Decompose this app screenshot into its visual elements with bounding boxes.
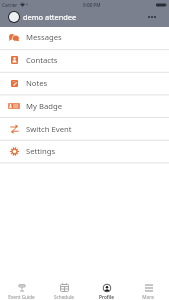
staticText: demo attendee [23, 12, 77, 22]
staticText: Profile [99, 294, 114, 300]
button[interactable]: More options [145, 10, 159, 24]
button[interactable]: Schedule [43, 278, 85, 300]
button[interactable]: Contacts [0, 50, 169, 73]
button[interactable]: Event Guide [0, 278, 43, 300]
staticText: Messages [26, 32, 62, 42]
staticText: More [142, 294, 154, 300]
button[interactable]: Profile [85, 278, 127, 300]
staticText: Notes [26, 78, 48, 88]
button[interactable]: More [127, 278, 169, 300]
button[interactable]: Settings [0, 142, 169, 163]
button[interactable]: My Badge [0, 96, 169, 119]
button[interactable]: Switch Event [0, 119, 169, 142]
staticText: Settings [26, 146, 56, 156]
staticText: Switch Event [26, 124, 72, 134]
staticText: Schedule [54, 294, 74, 300]
staticText: My Badge [26, 101, 62, 111]
staticText: Event Guide [8, 294, 35, 300]
button[interactable]: Messages [0, 27, 169, 50]
staticText: 9:08 PM [83, 2, 101, 8]
staticText: Contacts [26, 55, 58, 65]
staticText: Carrier [2, 2, 18, 8]
button[interactable]: Notes [0, 73, 169, 96]
